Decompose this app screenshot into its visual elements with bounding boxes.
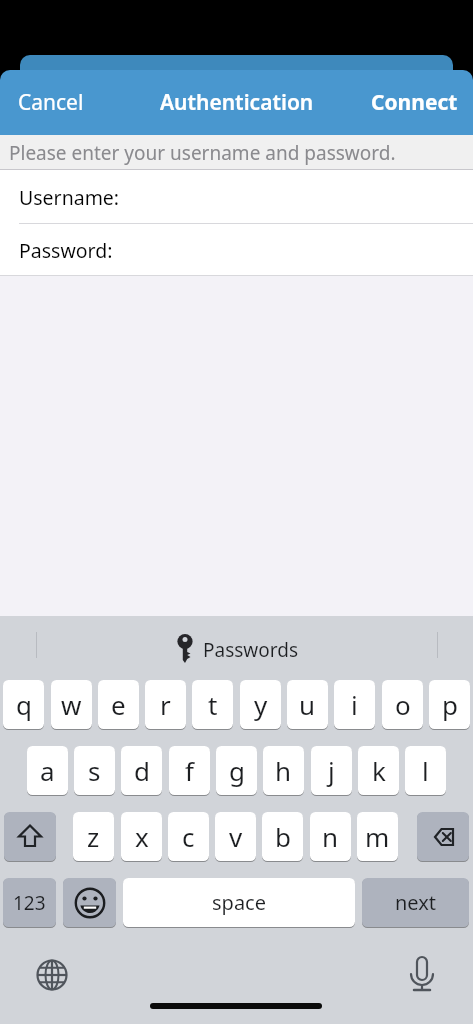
button[interactable]: d bbox=[121, 746, 162, 795]
staticText: Password: bbox=[19, 237, 113, 264]
button[interactable]: Cancel bbox=[18, 88, 84, 117]
staticText: y bbox=[254, 687, 268, 722]
button[interactable]: o bbox=[382, 680, 423, 729]
staticText: space bbox=[212, 889, 266, 916]
button[interactable]: l bbox=[405, 746, 446, 795]
staticText: d bbox=[134, 753, 150, 788]
staticText: o bbox=[395, 687, 411, 722]
button[interactable]: Passwords bbox=[174, 632, 299, 668]
staticText: v bbox=[229, 819, 243, 854]
staticText: j bbox=[328, 753, 335, 788]
staticText: c bbox=[182, 819, 195, 854]
staticText: w bbox=[61, 687, 82, 722]
staticText: Authentication bbox=[160, 88, 314, 117]
staticText: p bbox=[442, 687, 458, 722]
staticText: k bbox=[372, 753, 386, 788]
staticText: h bbox=[275, 753, 292, 788]
button[interactable]: n bbox=[310, 812, 351, 861]
staticText: x bbox=[135, 819, 149, 854]
button[interactable]: a bbox=[27, 746, 68, 795]
staticText: s bbox=[88, 753, 101, 788]
staticText: Passwords bbox=[203, 637, 299, 663]
button[interactable]: x bbox=[121, 812, 162, 861]
button[interactable]: i bbox=[334, 680, 375, 729]
staticText: Connect bbox=[371, 88, 458, 117]
button[interactable]: m bbox=[357, 812, 398, 861]
button[interactable]: w bbox=[51, 680, 92, 729]
staticText: a bbox=[40, 753, 55, 788]
staticText: e bbox=[111, 687, 126, 722]
staticText: b bbox=[275, 819, 291, 854]
staticText: q bbox=[16, 687, 32, 722]
staticText: l bbox=[422, 753, 429, 788]
staticText: r bbox=[160, 687, 171, 722]
button[interactable]: t bbox=[192, 680, 233, 729]
button[interactable]: f bbox=[169, 746, 210, 795]
staticText: next bbox=[395, 889, 437, 916]
button[interactable] bbox=[32, 955, 72, 995]
button[interactable]: Connect bbox=[371, 88, 458, 117]
button[interactable]: p bbox=[429, 680, 470, 729]
button[interactable]: Username: bbox=[0, 170, 473, 224]
staticText: g bbox=[229, 753, 245, 788]
button[interactable]: 123 bbox=[3, 878, 56, 927]
button[interactable]: y bbox=[240, 680, 281, 729]
staticText: 123 bbox=[13, 890, 46, 916]
staticText: Please enter your username and password. bbox=[9, 140, 396, 166]
button[interactable]: j bbox=[311, 746, 352, 795]
staticText: t bbox=[208, 687, 218, 722]
staticText: z bbox=[87, 819, 100, 854]
button[interactable]: q bbox=[3, 680, 44, 729]
button[interactable]: h bbox=[263, 746, 304, 795]
staticText: Username: bbox=[19, 184, 120, 211]
button[interactable]: u bbox=[287, 680, 328, 729]
button[interactable]: s bbox=[74, 746, 115, 795]
button[interactable] bbox=[4, 812, 56, 861]
button[interactable]: k bbox=[358, 746, 399, 795]
staticText: m bbox=[365, 819, 390, 854]
staticText: Cancel bbox=[18, 88, 84, 117]
button[interactable]: z bbox=[73, 812, 114, 861]
staticText: n bbox=[322, 819, 339, 854]
button[interactable] bbox=[63, 878, 116, 927]
button[interactable] bbox=[402, 952, 442, 994]
button[interactable]: Password: bbox=[0, 224, 473, 276]
button[interactable]: b bbox=[262, 812, 303, 861]
staticText: u bbox=[299, 687, 316, 722]
button[interactable]: next bbox=[362, 878, 469, 927]
staticText: f bbox=[185, 753, 194, 788]
button[interactable]: r bbox=[145, 680, 186, 729]
staticText: i bbox=[351, 687, 358, 722]
button[interactable]: v bbox=[215, 812, 256, 861]
button[interactable] bbox=[417, 812, 469, 861]
button[interactable]: e bbox=[98, 680, 139, 729]
button[interactable]: space bbox=[123, 878, 355, 927]
button[interactable]: g bbox=[216, 746, 257, 795]
button[interactable]: c bbox=[168, 812, 209, 861]
